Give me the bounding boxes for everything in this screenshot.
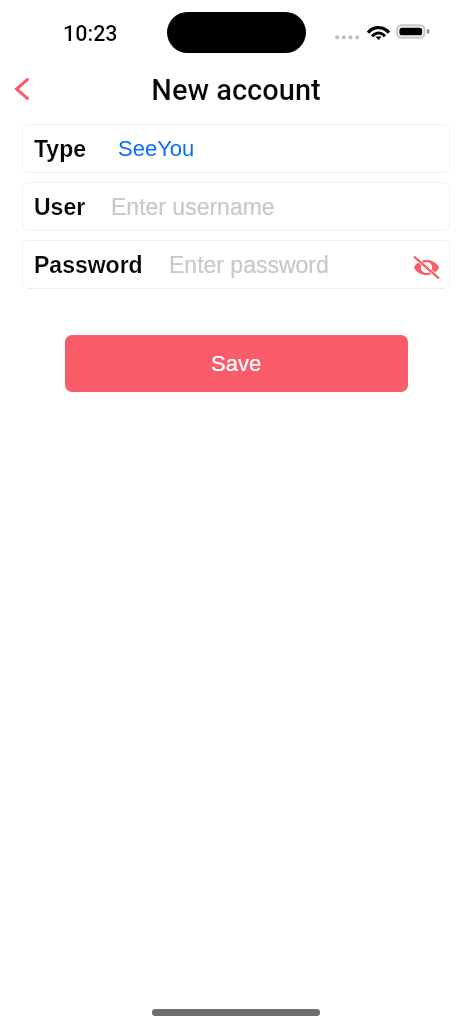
- staticText: Enter password: [169, 252, 329, 278]
- staticText: New account: [151, 73, 321, 107]
- staticText: Save: [211, 351, 262, 376]
- button[interactable]: User: [22, 182, 450, 231]
- button[interactable]: Show password: [411, 252, 441, 282]
- button[interactable]: Type: [22, 124, 450, 173]
- button[interactable]: Back: [0, 67, 44, 111]
- staticText: User: [34, 194, 86, 220]
- staticText: Password: [34, 252, 143, 278]
- staticText: 10:23: [63, 21, 118, 46]
- staticText: Type: [34, 136, 86, 162]
- staticText: Enter username: [111, 194, 275, 220]
- staticText: SeeYou: [118, 136, 195, 161]
- button[interactable]: Save: [65, 335, 408, 392]
- button[interactable]: Password: [22, 240, 450, 289]
